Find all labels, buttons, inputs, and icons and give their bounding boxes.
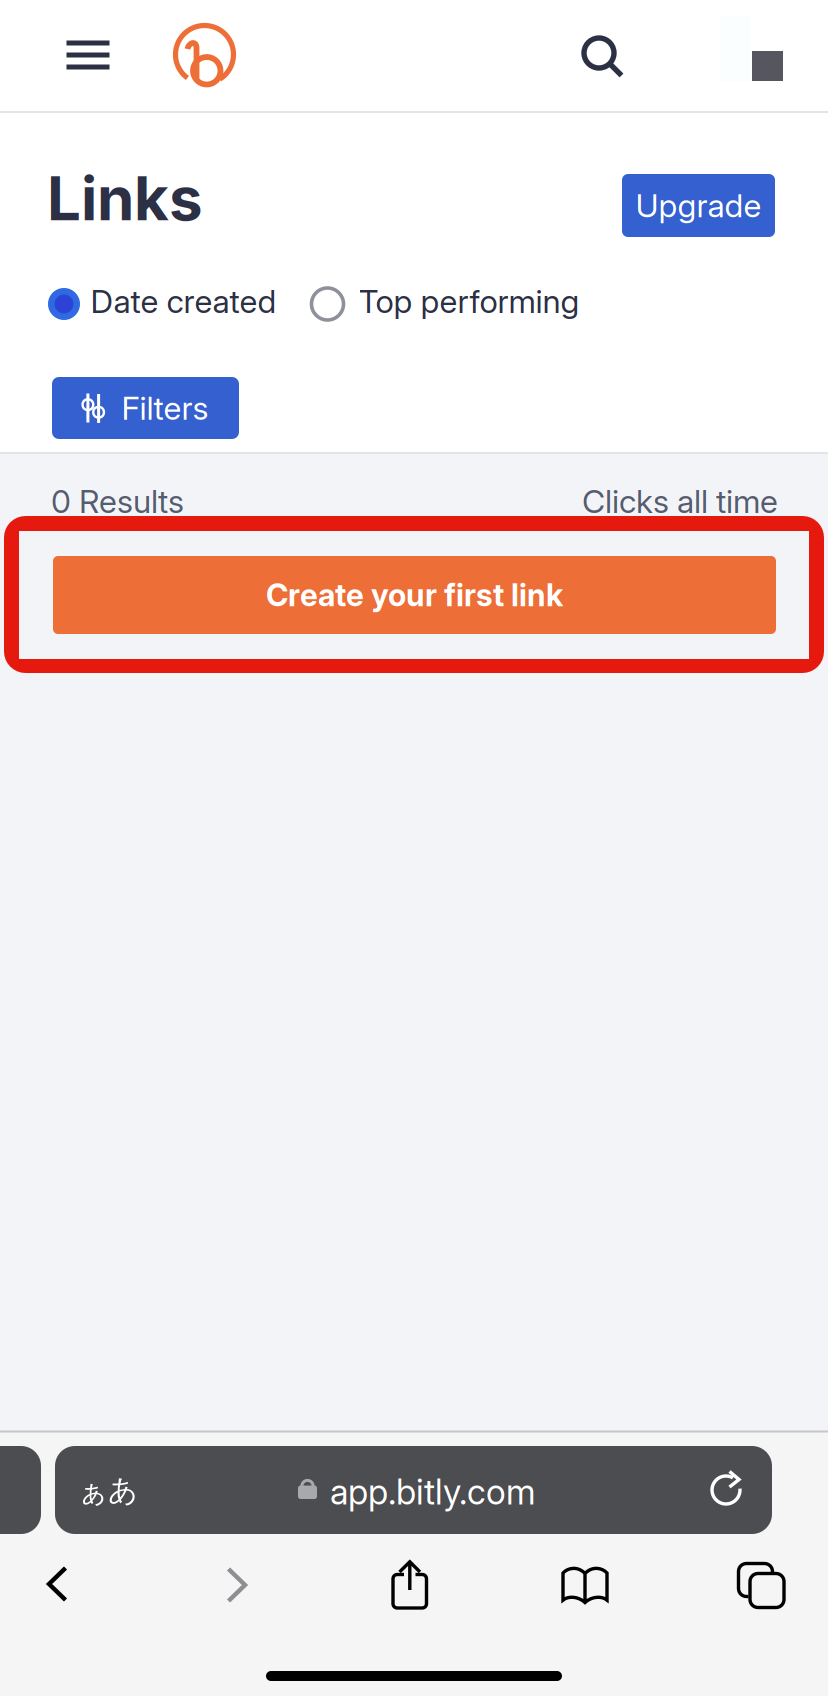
button[interactable]: Tabs: [717, 1542, 797, 1622]
staticText: Date created: [90, 282, 276, 321]
button[interactable]: Date created: [48, 282, 277, 326]
button[interactable]: Back: [17, 1544, 97, 1624]
button[interactable]: Upgrade: [622, 174, 775, 237]
staticText: Top performing: [358, 282, 579, 321]
staticText: app.bitly.com: [330, 1471, 536, 1513]
button[interactable]: Menu: [50, 17, 126, 93]
button[interactable]: Bitly home: [173, 23, 236, 87]
staticText: Links: [47, 162, 203, 235]
button[interactable]: Create your first link: [53, 556, 776, 634]
staticText: Clicks all time: [582, 482, 778, 521]
staticText: Create your first link: [266, 576, 563, 613]
button[interactable]: Share: [370, 1545, 450, 1625]
staticText: Filters: [121, 389, 208, 427]
button[interactable]: Address bar: app.bitly.com: [55, 1446, 772, 1534]
button[interactable]: Forward: [197, 1545, 277, 1625]
button[interactable]: Filters: [52, 377, 239, 439]
staticText: 0 Results: [51, 482, 184, 521]
staticText: ぁあ: [78, 1472, 138, 1509]
staticText: Upgrade: [635, 186, 761, 225]
button[interactable]: Top performing: [311, 282, 575, 326]
button[interactable]: Bookmarks: [545, 1545, 625, 1625]
button[interactable]: Search: [576, 30, 632, 86]
